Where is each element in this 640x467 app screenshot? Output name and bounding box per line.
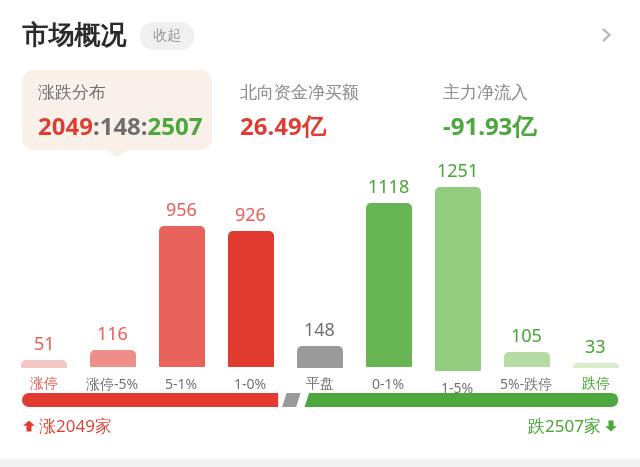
staticText: 5%-跌停	[500, 374, 553, 393]
button[interactable]: 116	[78, 321, 147, 393]
button[interactable]: 105	[492, 323, 561, 393]
staticText: 主力净流入	[443, 82, 528, 103]
staticText: 33	[585, 334, 606, 359]
staticText: 26.49亿	[240, 109, 326, 142]
staticText: 北向资金净买额	[240, 82, 359, 103]
button[interactable]	[22, 393, 618, 407]
button[interactable]: 1251	[423, 158, 492, 393]
staticText: 涨2049家	[39, 414, 112, 437]
button[interactable]: 926	[216, 202, 285, 393]
staticText: 涨停-5%	[86, 374, 139, 393]
staticText: 116	[97, 321, 128, 346]
staticText: 1251	[437, 158, 479, 183]
button[interactable]: 148	[285, 317, 354, 393]
staticText: 148	[304, 317, 335, 342]
staticText: 5-1%	[165, 374, 198, 393]
staticText: 市场概况	[22, 19, 126, 52]
staticText: 跌2507家	[528, 414, 601, 437]
button[interactable]: 956	[147, 197, 216, 393]
button[interactable]: 北向资金净买额	[224, 70, 415, 150]
staticText: 956	[166, 197, 197, 222]
button[interactable]: 主力净流入	[427, 70, 618, 150]
staticText: -91.93亿	[443, 109, 537, 142]
button[interactable]: 51	[10, 331, 78, 393]
button[interactable]: 收起	[140, 22, 194, 50]
button[interactable]: 33	[561, 334, 630, 393]
staticText: 0-1%	[372, 374, 405, 393]
staticText: 926	[235, 202, 266, 227]
staticText: 收起	[153, 27, 181, 45]
staticText: 跌停	[582, 375, 610, 393]
button[interactable]: 1118	[354, 174, 423, 393]
staticText: 涨停	[30, 375, 58, 393]
staticText: 1-5%	[441, 378, 474, 393]
staticText: 平盘	[306, 375, 334, 393]
staticText: 涨跌分布	[38, 82, 106, 103]
button[interactable]: 展开详情	[586, 15, 626, 55]
staticText: 2049:148:2507	[38, 109, 203, 142]
staticText: 1118	[368, 174, 410, 199]
staticText: 105	[511, 323, 542, 348]
button[interactable]: 涨跌分布	[22, 70, 212, 150]
staticText: 51	[34, 331, 55, 356]
staticText: 1-0%	[234, 374, 267, 393]
